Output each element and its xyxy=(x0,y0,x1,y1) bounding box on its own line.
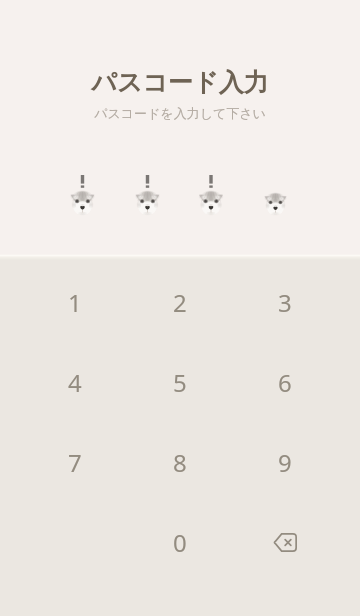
button[interactable]: 6 xyxy=(232,342,337,422)
staticText: 5 xyxy=(173,366,187,399)
staticText: 9 xyxy=(278,446,292,479)
button[interactable]: 0 xyxy=(127,502,232,582)
staticText: 6 xyxy=(278,366,292,399)
button[interactable]: 7 xyxy=(22,422,127,502)
staticText: パスコード入力 xyxy=(0,67,360,98)
button[interactable]: 1 xyxy=(22,262,127,342)
staticText: 8 xyxy=(173,446,187,479)
button[interactable]: 4 xyxy=(22,342,127,422)
staticText: パスコードを入力して下さい xyxy=(0,105,360,121)
button[interactable]: Delete xyxy=(232,502,337,582)
button[interactable]: 3 xyxy=(232,262,337,342)
other: Passcode, 3 of 4 digits entered xyxy=(0,168,360,228)
staticText: 7 xyxy=(68,446,82,479)
staticText: 4 xyxy=(68,366,82,399)
staticText: 3 xyxy=(278,286,292,319)
staticText: 1 xyxy=(68,286,82,319)
staticText: 0 xyxy=(173,526,187,559)
button[interactable]: 5 xyxy=(127,342,232,422)
button[interactable]: 2 xyxy=(127,262,232,342)
button[interactable]: 9 xyxy=(232,422,337,502)
button[interactable]: 8 xyxy=(127,422,232,502)
staticText: 2 xyxy=(173,286,187,319)
